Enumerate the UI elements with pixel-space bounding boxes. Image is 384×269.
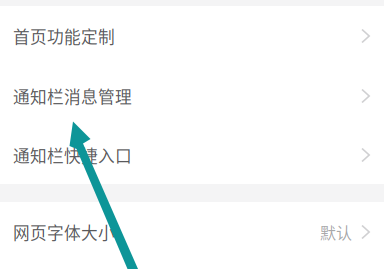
staticText: 首页功能定制 (13, 24, 115, 48)
staticText: 网页字体大小 (13, 220, 115, 244)
button[interactable]: 通知栏消息管理 (0, 66, 384, 126)
staticText: 默认 (320, 220, 352, 244)
button[interactable]: 网页字体大小 (0, 202, 384, 262)
staticText: 通知栏消息管理 (13, 84, 132, 108)
button[interactable]: 通知栏快捷入口 (0, 126, 384, 184)
staticText: 通知栏快捷入口 (13, 143, 132, 167)
button[interactable]: 首页功能定制 (0, 6, 384, 66)
